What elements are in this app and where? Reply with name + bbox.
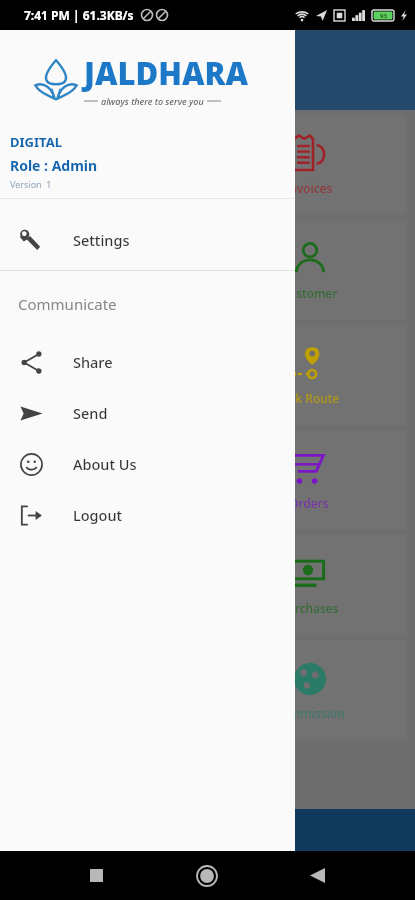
staticText: About Us bbox=[73, 454, 137, 474]
staticText: 93 bbox=[380, 12, 387, 20]
staticText: Settings bbox=[73, 230, 130, 250]
other: Home bbox=[197, 866, 217, 886]
staticText: Communicate bbox=[18, 294, 117, 314]
staticText: DIGITAL bbox=[10, 133, 62, 151]
staticText: Invoices bbox=[285, 180, 333, 196]
button[interactable]: Orders bbox=[8, 430, 203, 530]
staticText: 7:41 PM | 61.3KB/s bbox=[24, 7, 134, 23]
button[interactable]: Settings bbox=[0, 207, 295, 258]
staticText: Logout bbox=[73, 505, 123, 525]
staticText: Commission bbox=[274, 705, 345, 721]
button[interactable]: Milk Route bbox=[8, 325, 203, 425]
staticText: Share bbox=[73, 352, 113, 372]
button[interactable]: Invoices bbox=[211, 115, 407, 215]
button[interactable]: Commission bbox=[211, 640, 407, 740]
button[interactable]: Milk Route bbox=[211, 325, 407, 425]
staticText: Send bbox=[73, 403, 108, 423]
staticText: Customer bbox=[281, 285, 338, 301]
button[interactable]: Invoices bbox=[8, 115, 203, 215]
staticText: Purchases bbox=[280, 600, 339, 616]
staticText: Version 1 bbox=[10, 178, 52, 190]
button[interactable]: About Us bbox=[0, 438, 295, 489]
staticText: JALDHARA bbox=[84, 52, 248, 94]
button[interactable]: Orders bbox=[211, 430, 407, 530]
button[interactable]: Logout bbox=[0, 489, 295, 540]
button[interactable]: Customer bbox=[211, 220, 407, 320]
staticText: Role : Admin bbox=[10, 156, 98, 175]
other: Back bbox=[310, 868, 325, 883]
button[interactable]: Purchases bbox=[211, 535, 407, 635]
button[interactable]: Customer bbox=[8, 220, 203, 320]
staticText: Milk Route bbox=[278, 390, 340, 406]
staticText: Orders bbox=[289, 495, 329, 511]
button[interactable]: Send bbox=[0, 387, 295, 438]
staticText: Customer bbox=[77, 285, 134, 301]
button[interactable]: Share bbox=[0, 336, 295, 387]
staticText: always there to serve you bbox=[101, 95, 204, 107]
